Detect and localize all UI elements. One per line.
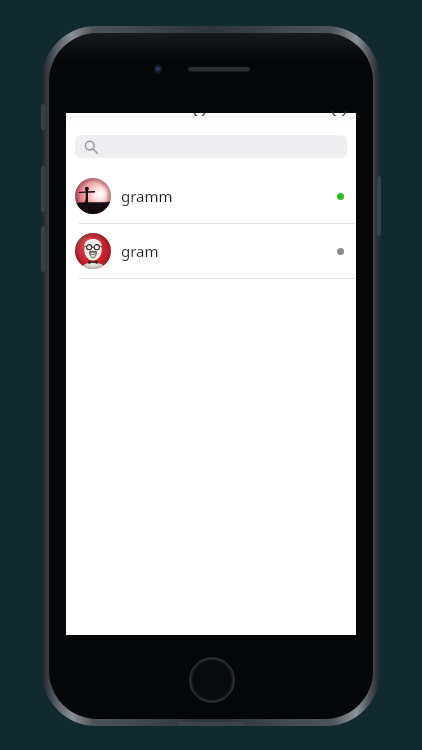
- other: Offline: [333, 244, 347, 258]
- other: Online: [333, 189, 347, 203]
- button[interactable]: gramm: [66, 169, 356, 223]
- button[interactable]: Home: [189, 657, 235, 703]
- button[interactable]: Search: [75, 135, 347, 158]
- staticText: gramm: [121, 186, 333, 206]
- staticText: gram: [121, 241, 333, 261]
- button[interactable]: gram: [66, 224, 356, 278]
